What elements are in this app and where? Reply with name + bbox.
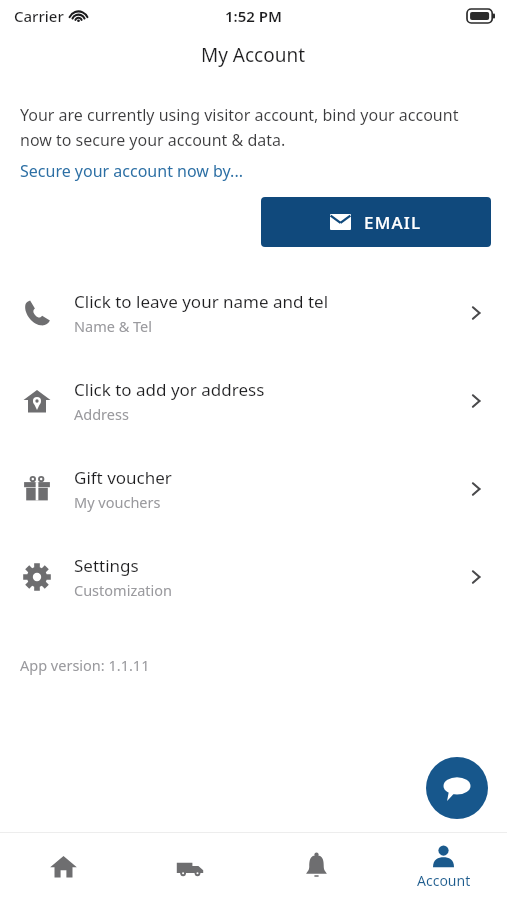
staticText: Secure your account now by... bbox=[20, 160, 243, 182]
staticText: Account bbox=[417, 871, 471, 890]
button[interactable]: Account bbox=[380, 833, 507, 900]
button[interactable]: Click to leave your name and tel bbox=[0, 269, 507, 357]
staticText: Address bbox=[74, 404, 129, 424]
staticText: My vouchers bbox=[74, 492, 161, 512]
staticText: Name & Tel bbox=[74, 316, 153, 336]
button[interactable]: Gift voucher bbox=[0, 445, 507, 533]
staticText: Carrier bbox=[14, 6, 64, 26]
staticText: My Account bbox=[201, 42, 306, 68]
staticText: Click to add yor address bbox=[74, 378, 265, 401]
staticText: Click to leave your name and tel bbox=[74, 290, 329, 313]
button[interactable]: Home bbox=[0, 833, 126, 900]
button[interactable]: Notifications bbox=[253, 833, 380, 900]
staticText: 1:52 PM bbox=[225, 6, 282, 26]
button[interactable]: Secure your account now by... bbox=[20, 160, 243, 182]
staticText: Your are currently using visitor account… bbox=[20, 104, 487, 150]
button[interactable]: EMAIL bbox=[261, 197, 491, 247]
staticText: Settings bbox=[74, 554, 139, 577]
button[interactable]: Click to add yor address bbox=[0, 357, 507, 445]
staticText: EMAIL bbox=[364, 211, 422, 234]
staticText: Customization bbox=[74, 580, 173, 600]
button[interactable]: Open chat support bbox=[426, 757, 488, 819]
button[interactable]: Deliveries bbox=[126, 833, 253, 900]
staticText: App version: 1.1.11 bbox=[20, 655, 150, 675]
button[interactable]: Settings bbox=[0, 533, 507, 621]
staticText: Gift voucher bbox=[74, 466, 172, 489]
